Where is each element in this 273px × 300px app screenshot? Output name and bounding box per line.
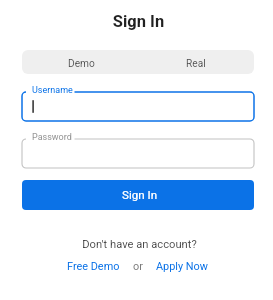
staticText: Don't have an account?: [3, 238, 273, 251]
staticText: Sign In: [2, 12, 273, 31]
button[interactable]: Real: [138, 50, 254, 74]
staticText: or: [133, 260, 143, 273]
staticText: Real: [186, 58, 206, 70]
button[interactable]: Apply Now: [156, 260, 209, 273]
staticText: Username: [32, 85, 73, 96]
staticText: Sign In: [122, 188, 158, 202]
staticText: Password: [32, 132, 72, 143]
button[interactable]: Demo: [22, 50, 138, 74]
button[interactable]: Free Demo: [67, 260, 120, 273]
button[interactable]: Username: [22, 92, 254, 121]
staticText: Apply Now: [156, 260, 209, 273]
staticText: Demo: [68, 58, 95, 70]
button[interactable]: Sign In: [22, 180, 254, 210]
staticText: Free Demo: [67, 260, 120, 273]
button[interactable]: Password: [22, 139, 254, 168]
